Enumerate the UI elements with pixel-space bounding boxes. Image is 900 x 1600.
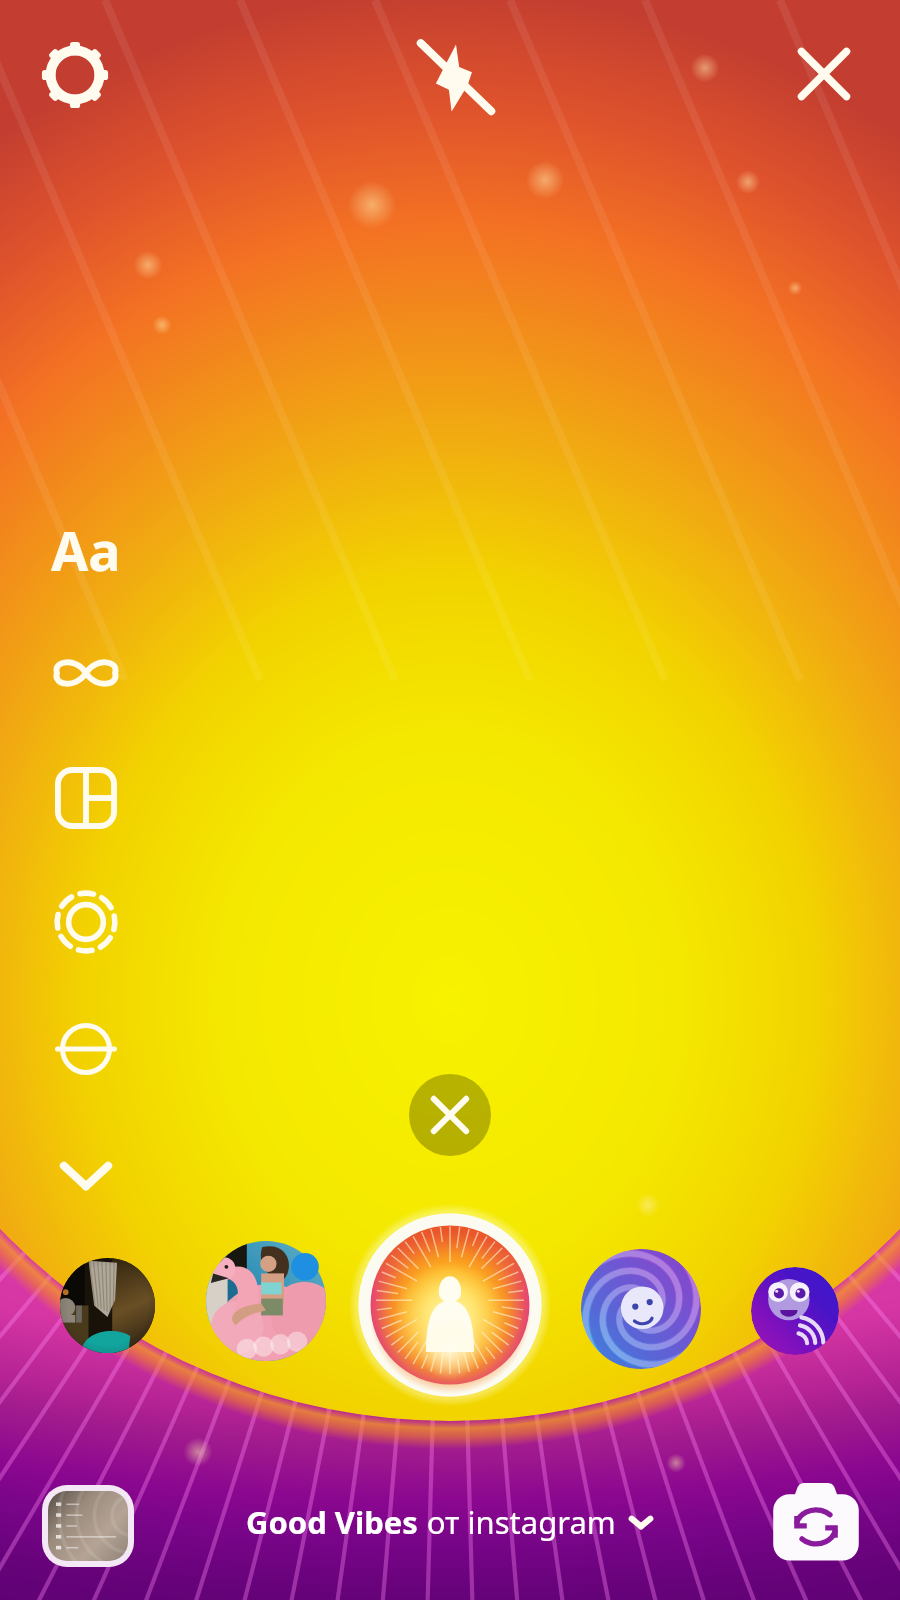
button[interactable]: Layout (46, 762, 126, 834)
button[interactable]: Close (775, 25, 873, 123)
button[interactable]: Settings (26, 26, 124, 124)
button[interactable]: Effect: sound face (751, 1267, 839, 1355)
staticText: от instagram (427, 1501, 616, 1543)
button[interactable]: Hands free (46, 1013, 126, 1085)
button[interactable]: Remove effect (409, 1074, 491, 1156)
button[interactable]: Effect: Good Vibes, selected (356, 1211, 544, 1399)
button[interactable]: Gallery (42, 1485, 134, 1567)
button[interactable]: Effect: city (60, 1258, 155, 1353)
staticText: Good Vibes (246, 1501, 418, 1543)
button[interactable]: Flash off (407, 29, 505, 127)
staticText: Aa (51, 513, 121, 587)
button[interactable]: Effect: flamingo (206, 1241, 326, 1361)
button[interactable]: Good Vibes (246, 1492, 654, 1552)
button[interactable]: Switch camera (770, 1480, 862, 1566)
button[interactable]: More options (46, 1142, 126, 1210)
button[interactable]: Aa (46, 512, 126, 588)
button[interactable]: Boomerang (46, 639, 126, 707)
button[interactable]: Effect: swirl (581, 1249, 701, 1369)
button[interactable]: Superzoom (46, 886, 126, 958)
